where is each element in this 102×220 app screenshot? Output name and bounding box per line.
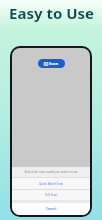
button[interactable]: Scan xyxy=(38,59,65,68)
staticText: Scan xyxy=(49,61,59,67)
staticText: Full Scan xyxy=(45,193,58,197)
button[interactable]: Full Scan xyxy=(12,190,90,200)
staticText: Easy to Use xyxy=(9,3,94,23)
staticText: Select the scan mode you want to use xyxy=(24,170,78,174)
staticText: Cancel xyxy=(46,207,57,211)
button[interactable]: Cancel xyxy=(12,203,90,215)
staticText: Quick Batch Scan xyxy=(39,182,64,186)
button[interactable]: Quick Batch Scan xyxy=(12,178,90,189)
